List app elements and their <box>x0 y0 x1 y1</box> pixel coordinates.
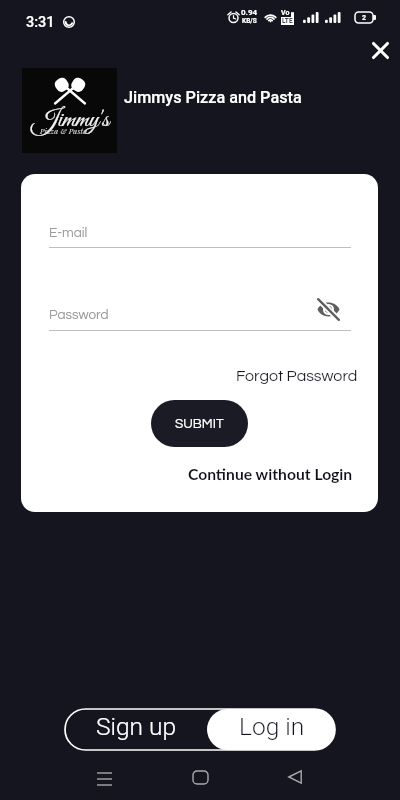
staticText: 0.94 <box>241 8 258 17</box>
button[interactable]: Sign up <box>65 709 207 750</box>
staticText: Continue without Login <box>188 465 353 484</box>
staticText: Sign up <box>96 712 177 741</box>
button[interactable]: Forgot Password <box>231 363 358 389</box>
staticText: SUBMIT <box>175 417 224 431</box>
staticText: 3:31 <box>26 14 55 31</box>
staticText: Forgot Password <box>236 368 358 384</box>
staticText: KB/S <box>242 17 257 25</box>
button[interactable]: E-mail <box>49 210 351 248</box>
staticText: E-mail <box>49 226 88 240</box>
staticText: Pizza & Pasta <box>40 126 88 136</box>
staticText: Vo <box>281 9 290 17</box>
staticText: 2 <box>362 14 367 22</box>
button[interactable]: Password <box>49 293 351 331</box>
button[interactable]: Log in <box>207 709 335 750</box>
button[interactable]: Continue without Login <box>181 460 353 488</box>
staticText: Password <box>49 308 109 322</box>
button[interactable]: Back <box>273 755 317 799</box>
button[interactable]: Close <box>364 34 396 66</box>
staticText: LTE <box>282 17 293 25</box>
staticText: Jimmys Pizza and Pasta <box>124 88 302 107</box>
button[interactable]: SUBMIT <box>151 400 248 447</box>
button[interactable]: Recents <box>82 757 126 800</box>
staticText: Log in <box>239 712 305 741</box>
staticText: Jimmy's <box>32 104 110 137</box>
button[interactable]: Show password <box>314 295 342 323</box>
button[interactable]: Home <box>178 755 222 799</box>
